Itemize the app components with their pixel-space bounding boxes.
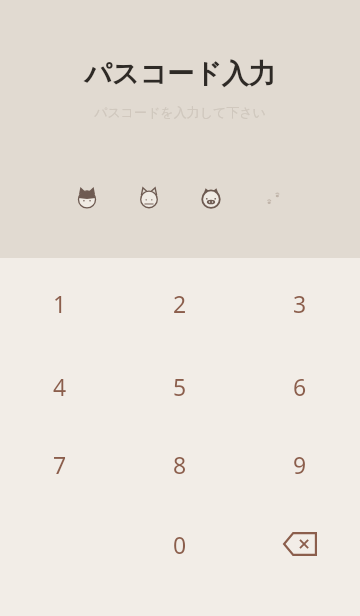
staticText: 2 <box>173 288 187 319</box>
staticText: 4 <box>53 371 67 402</box>
button[interactable]: Delete <box>240 504 360 584</box>
staticText: 0 <box>173 529 187 560</box>
staticText: 1 <box>53 288 67 319</box>
staticText: 3 <box>293 288 307 319</box>
staticText: 7 <box>53 449 67 480</box>
button[interactable]: 3 <box>240 258 360 348</box>
button[interactable]: 9 <box>240 424 360 504</box>
button[interactable]: 5 <box>120 348 240 424</box>
button[interactable]: 8 <box>120 424 240 504</box>
button[interactable]: 6 <box>240 348 360 424</box>
staticText: パスコード入力 <box>0 57 360 91</box>
staticText: 8 <box>173 449 187 480</box>
button[interactable]: 0 <box>120 504 240 584</box>
staticText: 9 <box>293 449 307 480</box>
button[interactable]: 4 <box>0 348 120 424</box>
staticText: 5 <box>173 371 187 402</box>
button[interactable]: 7 <box>0 424 120 504</box>
button[interactable]: 2 <box>120 258 240 348</box>
staticText: 6 <box>293 371 307 402</box>
button[interactable]: 1 <box>0 258 120 348</box>
staticText: パスコードを入力して下さい <box>0 104 360 120</box>
